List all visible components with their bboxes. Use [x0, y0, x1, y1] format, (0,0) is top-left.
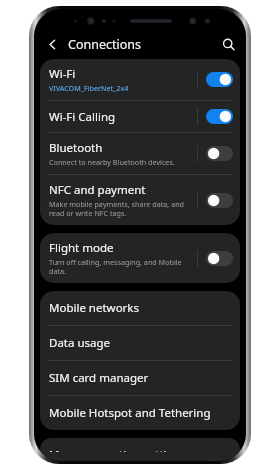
button[interactable]: Navigate up	[41, 33, 63, 55]
button[interactable]: More connection settings	[40, 438, 240, 461]
staticText: Connections	[68, 36, 141, 53]
button[interactable]: Bluetooth	[40, 133, 240, 174]
staticText: Flight mode	[49, 240, 114, 256]
button[interactable]: Wi-Fi	[40, 59, 240, 100]
button[interactable]: Data usage	[40, 326, 240, 360]
button[interactable]: Turn on	[206, 146, 233, 161]
staticText: SIM card manager	[49, 370, 149, 386]
button[interactable]: Search	[217, 33, 239, 55]
staticText: Data usage	[49, 335, 111, 351]
button[interactable]: NFC and payment	[40, 175, 240, 225]
staticText: Turn off calling, messaging, and Mobile …	[49, 257, 182, 276]
button[interactable]: Flight mode	[40, 233, 240, 283]
staticText: Wi-Fi	[49, 66, 76, 82]
staticText: NFC and payment	[49, 182, 146, 198]
button[interactable]: SIM card manager	[40, 361, 240, 395]
button[interactable]: Turn on	[206, 193, 233, 208]
staticText: Mobile Hotspot and Tethering	[49, 405, 211, 421]
staticText: Wi-Fi Calling	[49, 109, 116, 125]
button[interactable]: Mobile networks	[40, 291, 240, 325]
button[interactable]: Wi-Fi Calling	[40, 101, 240, 132]
button[interactable]: Mobile Hotspot and Tethering	[40, 396, 240, 430]
button[interactable]: Turn off	[206, 109, 233, 124]
button[interactable]: Turn on	[206, 251, 233, 266]
staticText: More connection settings	[49, 447, 187, 452]
staticText: Bluetooth	[49, 140, 103, 156]
staticText: Make mobile payments, share data, and re…	[49, 199, 185, 218]
staticText: Connect to nearby Bluetooth devices.	[49, 157, 175, 167]
staticText: Mobile networks	[49, 300, 140, 316]
button[interactable]: Turn off	[206, 72, 233, 87]
staticText: VIVACOM_FiberNet_2x4	[49, 83, 129, 93]
